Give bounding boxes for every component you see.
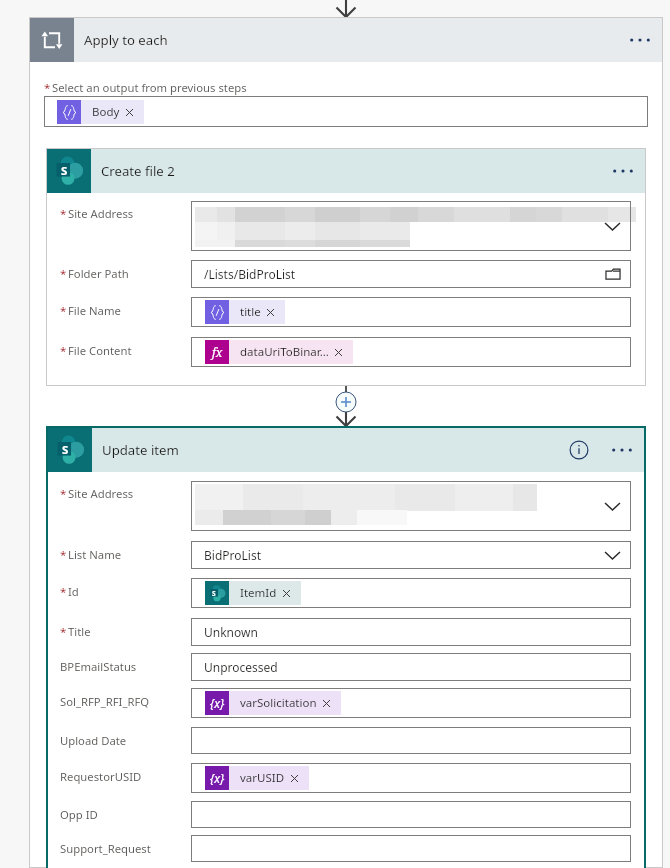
button[interactable]: S (191, 578, 631, 608)
button[interactable] (191, 201, 631, 251)
staticText: * (60, 206, 67, 222)
staticText: File Content (68, 343, 132, 358)
staticText: varSolicitation (240, 695, 317, 711)
staticText: * (60, 343, 67, 359)
staticText: * (60, 486, 67, 502)
staticText: Site Address (68, 206, 134, 221)
button[interactable]: Body (44, 96, 648, 127)
button[interactable]: Apply to each (30, 18, 662, 62)
staticText: * (44, 80, 51, 96)
button[interactable]: Body (57, 100, 144, 124)
button[interactable]: /Lists/BidProList (191, 260, 631, 288)
staticText: BPEmailStatus (60, 659, 137, 674)
button[interactable]: fx (205, 340, 353, 364)
staticText: dataUriToBinar... (240, 344, 329, 360)
staticText: Select an output from previous steps (52, 80, 247, 95)
button[interactable]: {x} (191, 763, 631, 793)
staticText: Opp ID (60, 807, 98, 822)
staticText: {x} (210, 695, 225, 711)
staticText: S (212, 589, 216, 597)
button[interactable]: title (191, 297, 631, 327)
staticText: RequestorUSID (60, 769, 142, 784)
button[interactable] (191, 727, 631, 754)
button[interactable]: {x} (191, 688, 631, 718)
staticText: Upload Date (60, 733, 127, 748)
staticText: Site Address (68, 486, 134, 501)
staticText: Update item (102, 441, 179, 459)
button[interactable]: BidProList (191, 541, 631, 569)
staticText: /Lists/BidProList (204, 266, 296, 282)
button[interactable]: S (47, 149, 645, 193)
button[interactable]: title (205, 300, 285, 324)
button[interactable] (191, 835, 631, 862)
staticText: fx (212, 344, 223, 360)
staticText: * (60, 266, 67, 282)
button[interactable]: fx (191, 337, 631, 367)
staticText: title (240, 304, 261, 320)
staticText: Unprocessed (204, 659, 278, 675)
staticText: * (60, 624, 67, 640)
staticText: Apply to each (84, 31, 168, 49)
staticText: Folder Path (68, 266, 129, 281)
staticText: List Name (68, 547, 122, 562)
staticText: Id (68, 584, 79, 599)
staticText: varUSID (240, 770, 285, 786)
button[interactable]: More commands (607, 159, 639, 183)
staticText: ItemId (240, 585, 277, 601)
button[interactable] (191, 481, 631, 531)
staticText: Sol_RFP_RFI_RFQ (60, 694, 150, 709)
staticText: Title (68, 624, 91, 639)
staticText: Body (92, 104, 120, 120)
button[interactable] (191, 801, 631, 828)
staticText: {x} (210, 770, 225, 786)
button[interactable]: Unprocessed (191, 653, 631, 681)
staticText: Support_Request (60, 841, 151, 856)
staticText: S (61, 163, 68, 177)
staticText: Create file 2 (101, 162, 175, 180)
button[interactable]: S (205, 581, 301, 605)
staticText: * (60, 584, 67, 600)
button[interactable]: More commands (624, 28, 656, 52)
staticText: Unknown (204, 624, 258, 640)
button[interactable]: Information (569, 440, 589, 460)
button[interactable]: {x} (205, 766, 309, 790)
button[interactable]: More commands (606, 438, 638, 462)
staticText: * (60, 303, 67, 319)
button[interactable]: S (48, 428, 644, 472)
staticText: * (60, 547, 67, 563)
staticText: File Name (68, 303, 121, 318)
staticText: S (62, 442, 69, 456)
button[interactable]: Unknown (191, 618, 631, 646)
button[interactable]: {x} (205, 691, 341, 715)
staticText: BidProList (204, 547, 261, 563)
